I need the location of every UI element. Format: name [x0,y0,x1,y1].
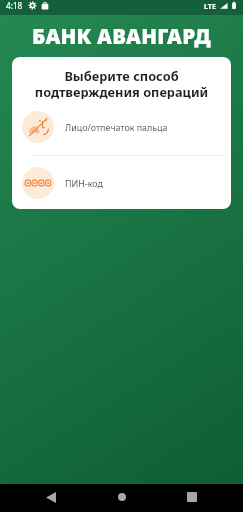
staticText: Выберите способ подтверждения операций [12,67,231,99]
button[interactable]: ПИН-код [12,156,231,209]
button[interactable]: Back [38,484,64,510]
button[interactable]: Recents [179,484,205,510]
staticText: LTE [204,1,217,11]
button[interactable]: Home [109,484,135,510]
staticText: БАНК АВАНГАРД [32,22,211,50]
staticText: 4:18 [6,0,23,11]
staticText: Лицо/отпечаток пальца [65,121,168,133]
staticText: ПИН-код [65,177,103,189]
button[interactable]: Лицо/отпечаток пальца [12,99,231,155]
